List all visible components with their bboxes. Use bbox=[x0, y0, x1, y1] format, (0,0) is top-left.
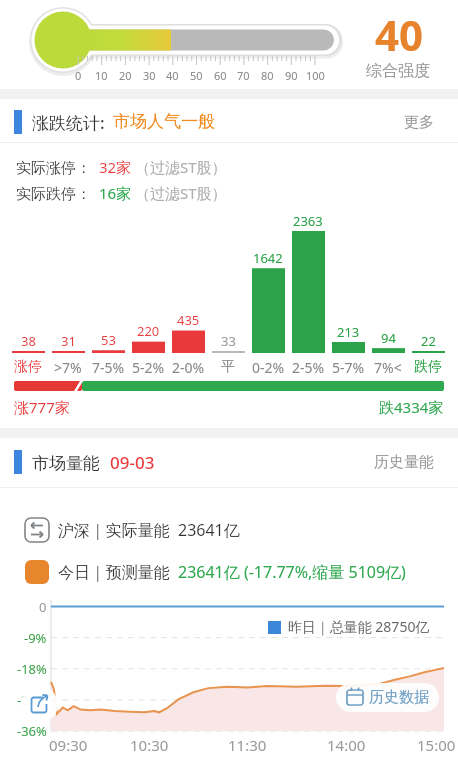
staticText: 20 bbox=[119, 68, 132, 83]
button[interactable]: 沪深｜实际量能 bbox=[58, 519, 240, 541]
staticText: 100 bbox=[306, 68, 325, 83]
staticText: -27% bbox=[17, 691, 47, 709]
button[interactable] bbox=[21, 686, 58, 723]
staticText: 0 bbox=[39, 598, 47, 616]
staticText: 16家 bbox=[95, 183, 135, 203]
staticText: 22 bbox=[421, 332, 436, 350]
staticText: 2-0% bbox=[172, 358, 205, 377]
staticText: 70 bbox=[237, 68, 250, 83]
staticText: 沪深｜实际量能 bbox=[58, 519, 178, 541]
staticText: 31 bbox=[61, 332, 76, 350]
staticText: -18% bbox=[17, 660, 47, 678]
staticText: 跌停 bbox=[414, 358, 442, 376]
staticText: 0-2% bbox=[252, 358, 285, 377]
staticText: 220 bbox=[137, 322, 160, 340]
staticText: 10 bbox=[95, 68, 108, 83]
staticText: （过滤ST股） bbox=[135, 157, 227, 177]
staticText: 市场量能 bbox=[32, 451, 105, 474]
button[interactable]: 历史量能 bbox=[374, 453, 434, 472]
staticText: 历史量能 bbox=[374, 453, 434, 472]
staticText: 5-7% bbox=[332, 358, 365, 377]
staticText: 09-03 bbox=[110, 451, 155, 474]
staticText: 平 bbox=[221, 358, 235, 376]
button[interactable]: 今日｜预测量能 bbox=[58, 561, 406, 583]
staticText: 15:00 bbox=[417, 735, 456, 755]
staticText: 跌4334家 bbox=[379, 397, 444, 417]
staticText: 市场人气一般 bbox=[113, 111, 215, 132]
staticText: 60 bbox=[214, 68, 227, 83]
staticText: 今日｜预测量能 bbox=[58, 561, 178, 583]
staticText: 10:30 bbox=[130, 735, 169, 755]
staticText: -36% bbox=[17, 722, 47, 740]
staticText: 09:30 bbox=[49, 735, 88, 755]
staticText: 5-2% bbox=[132, 358, 165, 377]
staticText: 11:30 bbox=[228, 735, 267, 755]
staticText: 1642 bbox=[253, 249, 283, 267]
staticText: 80 bbox=[261, 68, 274, 83]
staticText: 40 bbox=[166, 68, 179, 83]
staticText: 综合强度 bbox=[366, 61, 430, 81]
staticText: -9% bbox=[24, 629, 47, 647]
staticText: 7%< bbox=[374, 358, 402, 377]
staticText: 涨跌统计: bbox=[32, 111, 110, 134]
staticText: 更多 bbox=[404, 113, 434, 132]
staticText: 32家 bbox=[95, 157, 135, 177]
staticText: 94 bbox=[381, 329, 396, 347]
staticText: 30 bbox=[143, 68, 156, 83]
staticText: 昨日｜总量能 28750亿 bbox=[288, 617, 430, 636]
staticText: 40 bbox=[375, 6, 424, 63]
staticText: 90 bbox=[285, 68, 298, 83]
staticText: 2363 bbox=[293, 212, 323, 230]
staticText: 涨777家 bbox=[14, 397, 70, 417]
staticText: 53 bbox=[101, 331, 116, 349]
staticText: 33 bbox=[221, 332, 236, 350]
staticText: 14:00 bbox=[327, 735, 366, 755]
staticText: 50 bbox=[190, 68, 203, 83]
staticText: 涨停 bbox=[14, 358, 42, 376]
staticText: >7% bbox=[54, 358, 82, 377]
staticText: 0 bbox=[75, 68, 82, 83]
staticText: 2-5% bbox=[292, 358, 325, 377]
button[interactable]: 历史数据 bbox=[336, 683, 439, 712]
staticText: 7-5% bbox=[92, 358, 125, 377]
staticText: 23641亿 bbox=[178, 519, 240, 541]
staticText: 38 bbox=[21, 332, 36, 350]
staticText: （过滤ST股） bbox=[135, 183, 227, 203]
staticText: 实际涨停： bbox=[16, 157, 95, 177]
staticText: 213 bbox=[337, 323, 360, 341]
button[interactable]: 更多 bbox=[404, 113, 434, 132]
staticText: 435 bbox=[177, 311, 200, 329]
staticText: 23641亿 (-17.77%,缩量 5109亿) bbox=[178, 561, 406, 583]
staticText: 实际跌停： bbox=[16, 183, 95, 203]
staticText: 历史数据 bbox=[369, 688, 429, 707]
